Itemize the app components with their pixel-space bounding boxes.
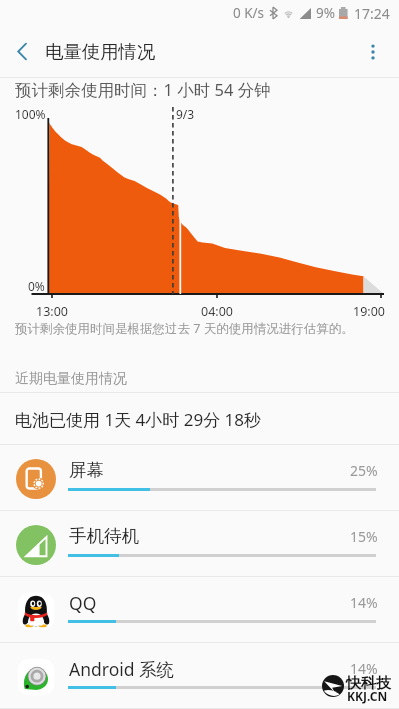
- staticText: 手机待机: [69, 525, 139, 547]
- staticText: 100%: [15, 106, 46, 122]
- staticText: 电量使用情况: [45, 40, 156, 63]
- button[interactable]: More options: [351, 26, 395, 77]
- staticText: 25%: [350, 461, 378, 480]
- button[interactable]: 屏幕: [0, 445, 399, 511]
- button[interactable]: QQ: [0, 577, 399, 643]
- staticText: 9/3: [176, 106, 195, 122]
- staticText: 9%: [316, 4, 335, 22]
- staticText: 04:00: [201, 303, 233, 320]
- staticText: Android 系统: [69, 657, 175, 681]
- staticText: 屏幕: [69, 459, 104, 481]
- staticText: 0 K/s: [233, 4, 265, 22]
- staticText: QQ: [69, 591, 97, 615]
- staticText: KKJ.CN: [347, 688, 388, 704]
- staticText: 0%: [28, 278, 45, 294]
- staticText: 15%: [350, 527, 378, 546]
- staticText: 14%: [350, 659, 378, 678]
- button[interactable]: Back: [2, 26, 42, 77]
- staticText: 预计剩余使用时间是根据您过去 7 天的使用情况进行估算的。: [15, 320, 354, 337]
- staticText: 近期电量使用情况: [15, 370, 127, 388]
- staticText: 快科技: [346, 674, 391, 693]
- staticText: 预计剩余使用时间：1 小时 54 分钟: [15, 78, 271, 101]
- staticText: 电池已使用 1天 4小时 29分 18秒: [15, 408, 262, 431]
- staticText: 14%: [350, 593, 378, 612]
- staticText: 17:24: [354, 4, 390, 23]
- button[interactable]: Android 系统: [0, 643, 399, 709]
- staticText: 13:00: [36, 303, 68, 320]
- button[interactable]: 手机待机: [0, 511, 399, 577]
- staticText: 19:00: [353, 303, 385, 320]
